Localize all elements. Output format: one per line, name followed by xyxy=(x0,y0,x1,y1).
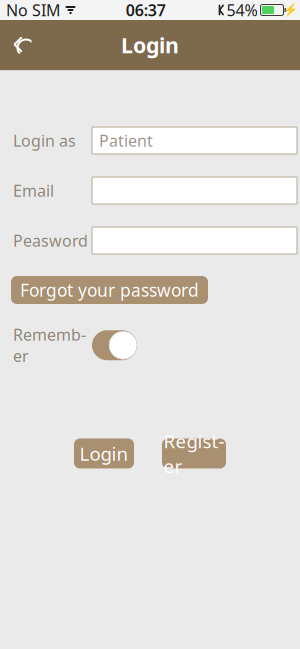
button[interactable]: Patient xyxy=(92,127,297,154)
button[interactable]: Back xyxy=(0,20,46,70)
staticText: Forgot your password xyxy=(20,278,199,301)
staticText: Patient xyxy=(99,130,153,151)
staticText: Remember xyxy=(13,324,86,366)
staticText: Login xyxy=(79,441,128,466)
staticText: Register xyxy=(163,429,224,478)
staticText: Peasword xyxy=(13,230,88,251)
button[interactable]: Remember me xyxy=(92,330,137,360)
button[interactable]: Forgot your password xyxy=(11,276,208,304)
staticText: 06:37 xyxy=(126,0,166,21)
staticText: Email xyxy=(13,180,54,201)
button[interactable]: Login xyxy=(74,438,134,468)
staticText: Login as xyxy=(13,130,76,151)
staticText: 54% xyxy=(226,0,257,21)
button[interactable] xyxy=(92,177,297,204)
button[interactable]: Register xyxy=(162,438,226,468)
staticText: Login xyxy=(121,31,179,59)
staticText: No SIM xyxy=(6,0,61,21)
staticText: ⚡ xyxy=(283,3,298,17)
button[interactable] xyxy=(92,227,297,254)
